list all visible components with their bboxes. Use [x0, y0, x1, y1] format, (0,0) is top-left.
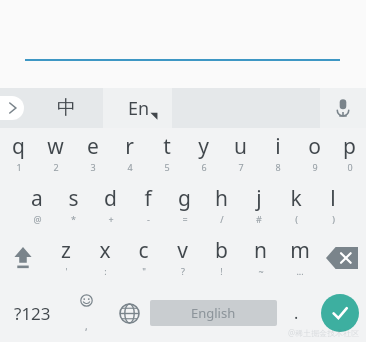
staticText: : [104, 265, 107, 277]
staticText: @稀土掘金技术社区 [288, 327, 360, 338]
button[interactable]: i [259, 128, 296, 180]
staticText: 4 [127, 161, 133, 173]
staticText: ' [65, 265, 68, 277]
staticText: ! [220, 265, 223, 277]
button[interactable]: 中 [46, 88, 86, 128]
button[interactable]: t [148, 128, 185, 180]
button[interactable]: p [333, 128, 366, 180]
staticText: = [182, 213, 188, 225]
staticText: 8 [275, 161, 281, 173]
staticText: m [290, 236, 310, 265]
button[interactable]: Enter [321, 294, 359, 332]
staticText: g [178, 184, 191, 213]
staticText: " [142, 265, 146, 277]
staticText: b [215, 236, 228, 265]
button[interactable]: f [129, 180, 166, 232]
staticText: - [147, 213, 150, 225]
button[interactable]: x [85, 232, 124, 284]
button[interactable]: r [111, 128, 148, 180]
button[interactable]: Change language [108, 284, 150, 342]
staticText: i [275, 132, 281, 161]
staticText: l [330, 184, 336, 213]
staticText: o [308, 132, 321, 161]
staticText: 中 [57, 96, 76, 120]
staticText: k [290, 184, 302, 213]
button[interactable]: Voice input [322, 88, 364, 128]
staticText: ~ [258, 265, 264, 277]
button[interactable]: e [74, 128, 111, 180]
staticText: 6 [201, 161, 207, 173]
staticText: p [343, 132, 356, 161]
staticText: English [191, 304, 236, 322]
button[interactable]: n [241, 232, 280, 284]
staticText: ( [295, 213, 298, 225]
staticText: f [144, 184, 152, 213]
staticText: 3 [90, 161, 96, 173]
staticText: w [47, 132, 64, 161]
staticText: s [68, 184, 79, 213]
button[interactable]: English [150, 300, 277, 326]
staticText: 2 [53, 161, 59, 173]
staticText: r [125, 132, 134, 161]
staticText: En [128, 96, 150, 121]
staticText: t [163, 132, 171, 161]
button[interactable]: b [202, 232, 241, 284]
staticText: # [256, 213, 262, 225]
button[interactable]: o [296, 128, 333, 180]
button[interactable]: q [0, 128, 37, 180]
button[interactable]: g [166, 180, 203, 232]
staticText: y [198, 132, 209, 161]
staticText: ?123 [14, 302, 51, 325]
button[interactable]: z [46, 232, 85, 284]
staticText: h [215, 184, 228, 213]
staticText: z [61, 236, 71, 265]
staticText: @ [33, 213, 42, 225]
staticText: ? [181, 265, 185, 277]
button[interactable]: En [117, 88, 161, 128]
button[interactable]: Backspace [319, 232, 364, 284]
staticText: * [71, 213, 76, 225]
staticText: ) [332, 213, 335, 225]
button[interactable]: y [185, 128, 222, 180]
button[interactable]: j [240, 180, 277, 232]
staticText: . [294, 302, 299, 324]
staticText: / [220, 213, 224, 225]
staticText: 0 [347, 161, 353, 173]
staticText: 1 [16, 161, 22, 173]
button[interactable]: k [277, 180, 314, 232]
button[interactable]: v [163, 232, 202, 284]
button[interactable]: m [280, 232, 319, 284]
button[interactable]: . [277, 284, 315, 342]
button[interactable]: a [18, 180, 55, 232]
staticText: 9 [312, 161, 318, 173]
button[interactable]: Expand toolbar [0, 96, 24, 120]
button[interactable]: c [124, 232, 163, 284]
staticText: c [138, 236, 149, 265]
staticText: j [256, 184, 262, 213]
staticText: x [99, 236, 111, 265]
staticText: , [85, 319, 88, 333]
button[interactable]: u [222, 128, 259, 180]
button[interactable]: l [314, 180, 351, 232]
button[interactable]: ?123 [0, 284, 64, 342]
staticText: 7 [238, 161, 244, 173]
staticText: u [234, 132, 247, 161]
button[interactable]: Emoji [64, 284, 108, 342]
button[interactable]: h [203, 180, 240, 232]
staticText: q [12, 132, 25, 161]
staticText: a [31, 184, 43, 213]
button[interactable]: s [55, 180, 92, 232]
staticText: e [87, 132, 99, 161]
staticText: 5 [164, 161, 170, 173]
staticText: ... [296, 265, 304, 277]
button[interactable]: Shift [0, 232, 46, 284]
button[interactable]: d [92, 180, 129, 232]
staticText: n [254, 236, 267, 265]
button[interactable] [103, 88, 172, 128]
staticText: + [108, 213, 114, 225]
staticText: v [177, 236, 188, 265]
button[interactable]: w [37, 128, 74, 180]
staticText: d [104, 184, 117, 213]
